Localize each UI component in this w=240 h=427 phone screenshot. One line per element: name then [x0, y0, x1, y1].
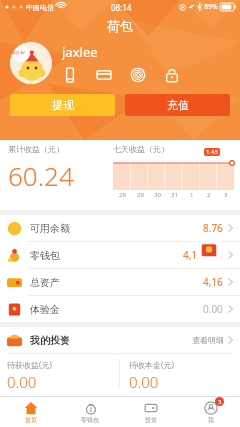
- staticText: 2: [207, 191, 211, 199]
- staticText: 28: [119, 191, 126, 199]
- staticText: 首页: [25, 416, 37, 424]
- button[interactable]: 零钱包: [0, 242, 240, 268]
- button[interactable]: Lock: [164, 67, 180, 83]
- button[interactable]: 3: [180, 397, 240, 427]
- staticText: 提现: [52, 98, 74, 112]
- staticText: 可用余额: [30, 222, 70, 235]
- staticText: 0.00: [129, 372, 159, 392]
- staticText: 08:14: [111, 2, 132, 13]
- staticText: 0.00: [7, 372, 37, 392]
- staticText: 我: [208, 416, 214, 424]
- staticText: 体验金: [30, 303, 60, 316]
- button[interactable]: 我的投资: [0, 327, 240, 353]
- staticText: 89%: [204, 2, 218, 12]
- staticText: 4,16: [203, 275, 223, 289]
- button[interactable]: 总资产: [0, 269, 240, 295]
- staticText: 1: [190, 191, 194, 199]
- button[interactable]: Security: [130, 67, 146, 83]
- staticText: 荷包: [107, 18, 133, 34]
- staticText: 七天收益（元）: [113, 144, 169, 154]
- button[interactable]: 零钱包: [60, 397, 120, 427]
- staticText: 0.00: [203, 302, 223, 316]
- button[interactable]: 提现: [10, 94, 115, 116]
- button[interactable]: 体验金: [0, 296, 240, 322]
- button[interactable]: Phone: [62, 67, 78, 83]
- staticText: 零钱包: [81, 416, 99, 424]
- staticText: 待收本金(元): [129, 359, 174, 370]
- button[interactable]: Profile avatar: [10, 42, 52, 84]
- button[interactable]: 投资: [120, 397, 180, 427]
- staticText: 4,151.48: [183, 248, 223, 262]
- staticText: 29: [137, 191, 144, 199]
- staticText: 投资: [145, 416, 157, 424]
- staticText: 查看明细: [192, 335, 224, 345]
- staticText: 31: [171, 191, 178, 199]
- staticText: jaxlee: [62, 43, 98, 61]
- staticText: 60.24: [8, 158, 74, 193]
- staticText: 8.76: [203, 221, 223, 235]
- button[interactable]: 可用余额: [0, 215, 240, 241]
- staticText: 1.45: [206, 148, 218, 156]
- staticText: 3: [218, 398, 222, 406]
- staticText: 待获收益(元): [7, 359, 52, 370]
- staticText: 充值: [167, 98, 189, 112]
- button[interactable]: 首页: [0, 397, 60, 427]
- staticText: 求红包!: [12, 50, 26, 55]
- staticText: 零钱包: [30, 249, 60, 262]
- staticText: 我的投资: [30, 334, 70, 347]
- staticText: 总资产: [30, 276, 60, 289]
- staticText: 中国电信: [26, 3, 54, 12]
- staticText: 30: [154, 191, 161, 199]
- button[interactable]: Bank card: [96, 67, 112, 83]
- staticText: 累计收益（元）: [8, 144, 64, 154]
- button[interactable]: 充值: [125, 94, 230, 116]
- staticText: 3: [224, 191, 228, 199]
